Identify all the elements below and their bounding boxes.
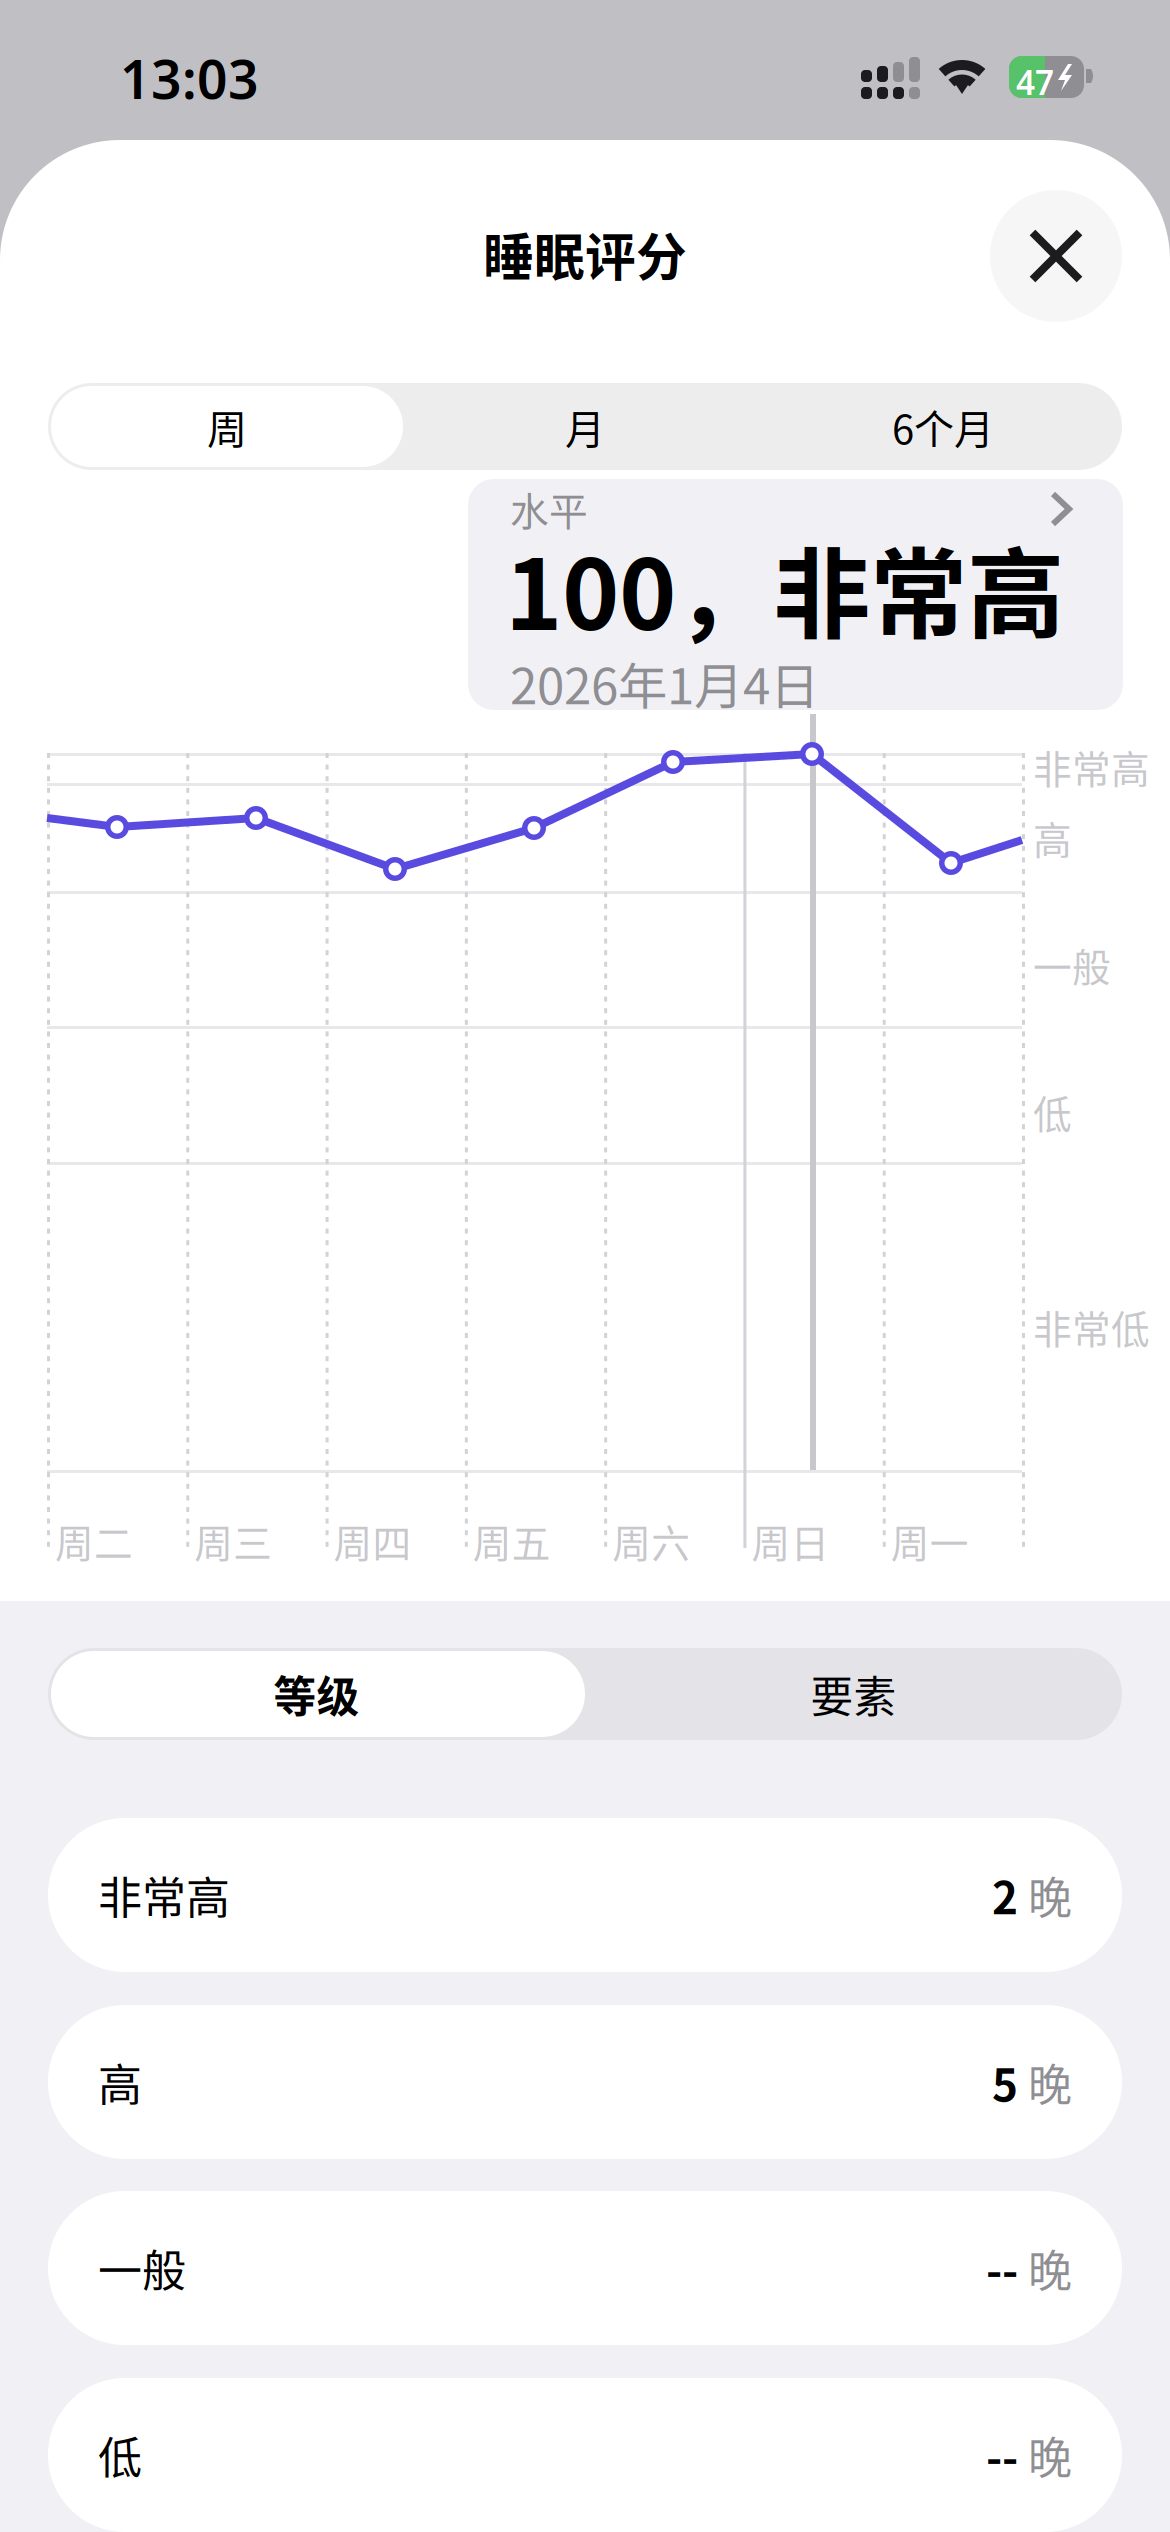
button[interactable]: 非常高	[48, 1818, 1122, 1972]
button[interactable]: 等级	[48, 1648, 585, 1740]
staticText: 水平	[510, 481, 588, 537]
staticText: 100，非常高	[505, 517, 1064, 658]
staticText: 低	[1033, 1084, 1072, 1140]
staticText: 月	[565, 397, 605, 455]
staticText: 一般	[98, 2236, 186, 2300]
staticText: 晚	[1018, 2050, 1072, 2114]
staticText: 周三	[194, 1513, 272, 1569]
staticText: 周日	[751, 1513, 829, 1569]
staticText: 13:03	[120, 43, 259, 114]
button[interactable]: 月	[406, 383, 764, 470]
staticText: 47	[1016, 60, 1054, 104]
staticText: 非常高	[98, 1863, 230, 1927]
button[interactable]: 水平	[468, 479, 1123, 710]
button[interactable]: 6个月	[764, 383, 1122, 470]
staticText: 晚	[1018, 2423, 1072, 2487]
staticText: 晚	[1018, 1863, 1072, 1927]
button[interactable]: 周	[48, 383, 406, 470]
staticText: 非常高	[1033, 739, 1150, 795]
staticText: 周	[207, 397, 247, 455]
staticText: 6个月	[892, 397, 994, 455]
staticText: 周四	[334, 1513, 412, 1569]
staticText: 低	[98, 2423, 142, 2487]
staticText: 晚	[1018, 2236, 1072, 2300]
staticText: 要素	[810, 1663, 896, 1725]
button[interactable]: 一般	[48, 2191, 1122, 2345]
staticText: 周二	[55, 1513, 133, 1569]
staticText: 2	[992, 1863, 1018, 1927]
staticText: 等级	[273, 1663, 359, 1725]
staticText: 高	[98, 2050, 142, 2114]
button[interactable]: 要素	[585, 1648, 1122, 1740]
button[interactable]: 关闭	[990, 190, 1122, 322]
staticText: 非常低	[1033, 1299, 1150, 1355]
staticText: --	[986, 2236, 1018, 2300]
staticText: 一般	[1033, 937, 1111, 993]
staticText: 2026年1月4日	[510, 647, 819, 718]
staticText: 睡眠评分	[483, 217, 687, 291]
staticText: --	[986, 2423, 1018, 2487]
staticText: 周五	[473, 1513, 551, 1569]
button[interactable]: 低	[48, 2378, 1122, 2532]
staticText: 5	[992, 2050, 1018, 2114]
staticText: 周一	[891, 1513, 969, 1569]
button[interactable]: 高	[48, 2005, 1122, 2159]
staticText: 周六	[612, 1513, 690, 1569]
staticText: 高	[1033, 810, 1072, 866]
